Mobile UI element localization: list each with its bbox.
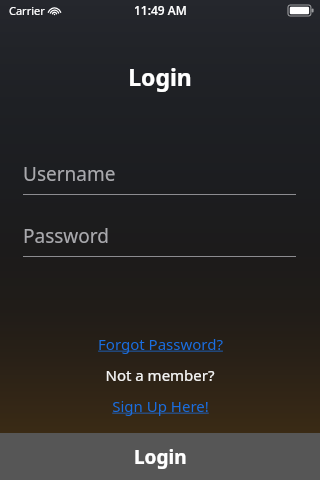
staticText: Sign Up Here! — [112, 396, 209, 416]
button[interactable]: Password input field — [23, 223, 296, 257]
staticText: Password — [23, 223, 109, 249]
staticText: 11:49 AM — [134, 2, 187, 18]
staticText: Login — [0, 61, 320, 92]
staticText: Not a member? — [105, 365, 215, 385]
staticText: Username — [23, 161, 116, 187]
button[interactable]: Username input field — [23, 161, 296, 195]
staticText: Carrier — [9, 3, 45, 18]
staticText: Login — [134, 444, 187, 470]
button[interactable]: Not a member? — [97, 363, 223, 387]
button[interactable]: Login — [0, 433, 320, 480]
button[interactable]: Forgot Password? — [90, 332, 231, 356]
button[interactable]: Sign Up Here! — [104, 394, 217, 418]
staticText: Forgot Password? — [98, 334, 223, 354]
